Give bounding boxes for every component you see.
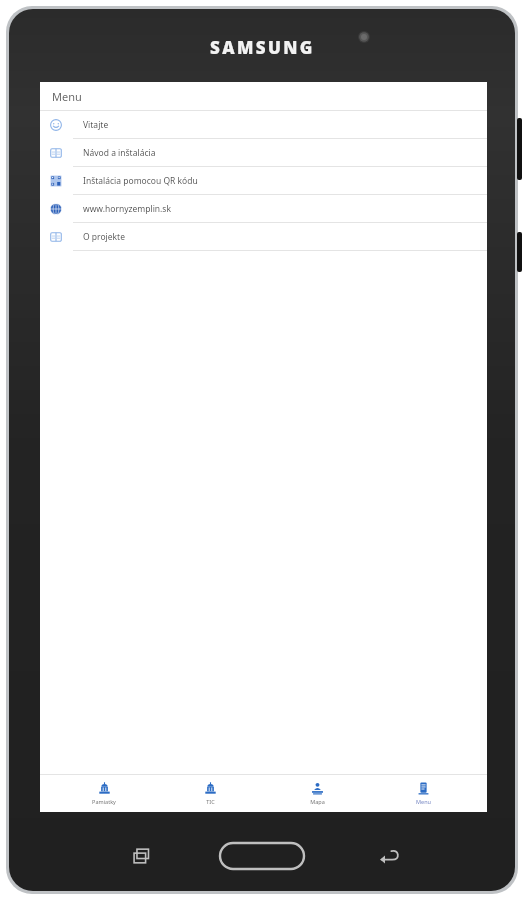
button[interactable]: Pamiatky <box>61 775 147 812</box>
button[interactable]: www.hornyzemplin.sk <box>40 195 487 222</box>
button[interactable]: Menu <box>380 775 466 812</box>
button[interactable]: Vitajte <box>40 111 487 138</box>
staticText: Menu <box>416 798 431 805</box>
other: Recent apps <box>133 847 151 865</box>
staticText: Mapa <box>310 798 325 805</box>
staticText: Pamiatky <box>92 798 116 805</box>
button[interactable]: TIC <box>167 775 253 812</box>
button[interactable]: Návod a inštalácia <box>40 139 487 166</box>
staticText: www.hornyzemplin.sk <box>83 203 171 215</box>
button[interactable]: O projekte <box>40 223 487 250</box>
staticText: Menu <box>52 89 82 104</box>
other: Back <box>379 846 399 866</box>
staticText: O projekte <box>83 231 125 243</box>
staticText: Inštalácia pomocou QR kódu <box>83 175 198 187</box>
staticText: SAMSUNG <box>210 36 315 59</box>
button[interactable]: Inštalácia pomocou QR kódu <box>40 167 487 194</box>
staticText: Vitajte <box>83 119 109 131</box>
staticText: TIC <box>206 798 215 805</box>
other: Home <box>220 843 304 869</box>
button[interactable]: Mapa <box>274 775 360 812</box>
staticText: Návod a inštalácia <box>83 147 156 159</box>
